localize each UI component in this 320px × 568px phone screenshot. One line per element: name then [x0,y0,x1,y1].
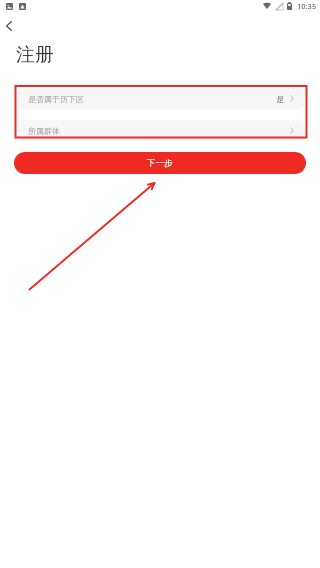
staticText: 所属群体 [28,126,60,136]
staticText: 10:35 [297,1,317,11]
button[interactable]: Back [0,16,19,36]
button[interactable]: 所属群体 [18,120,304,141]
button[interactable]: 下一步 [14,152,306,174]
button[interactable]: 是否属于历下区 [18,88,304,109]
staticText: 下一步 [147,158,173,169]
staticText: 注册 [16,43,54,67]
staticText: 是 [276,94,284,104]
staticText: 是否属于历下区 [28,94,84,104]
